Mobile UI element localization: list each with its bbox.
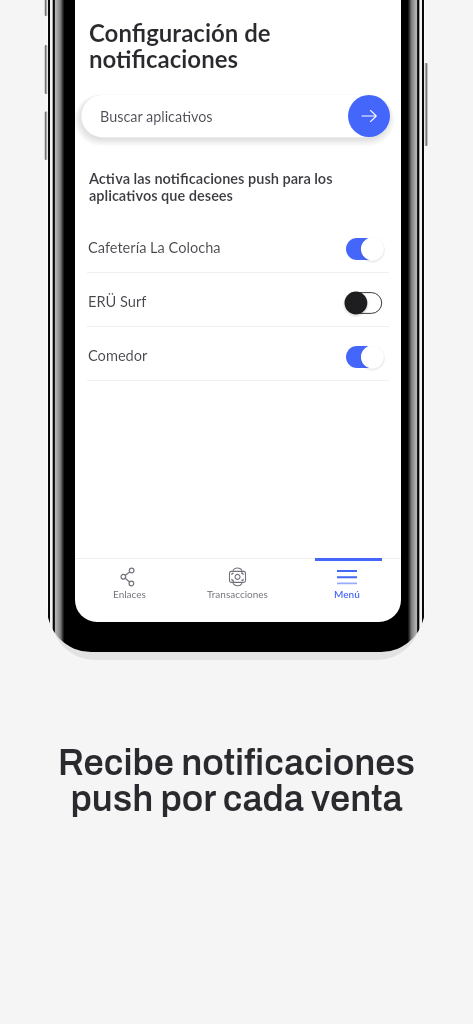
staticText: Comedor [88,347,148,365]
staticText: Cafetería La Colocha [88,239,221,257]
button[interactable]: Transacciones [183,558,292,622]
staticText: Menú [334,588,360,600]
staticText: Configuración de notificaciones [89,18,271,73]
button[interactable]: Enlaces [75,558,183,622]
staticText: Transacciones [207,588,268,600]
button[interactable]: ERÜ Surf [75,273,401,327]
button[interactable]: Buscar [348,95,390,137]
staticText: Activa las notificaciones push para los … [89,170,333,204]
button[interactable]: Comedor [75,327,401,381]
button[interactable]: Buscar aplicativos [81,95,388,137]
staticText: Recibe notificaciones push por cada vent… [58,743,415,819]
button[interactable]: Menú [292,558,401,622]
button[interactable]: Cafetería La Colocha [75,219,401,273]
staticText: Buscar aplicativos [100,108,213,125]
staticText: Enlaces [113,588,146,600]
staticText: ERÜ Surf [88,293,147,311]
